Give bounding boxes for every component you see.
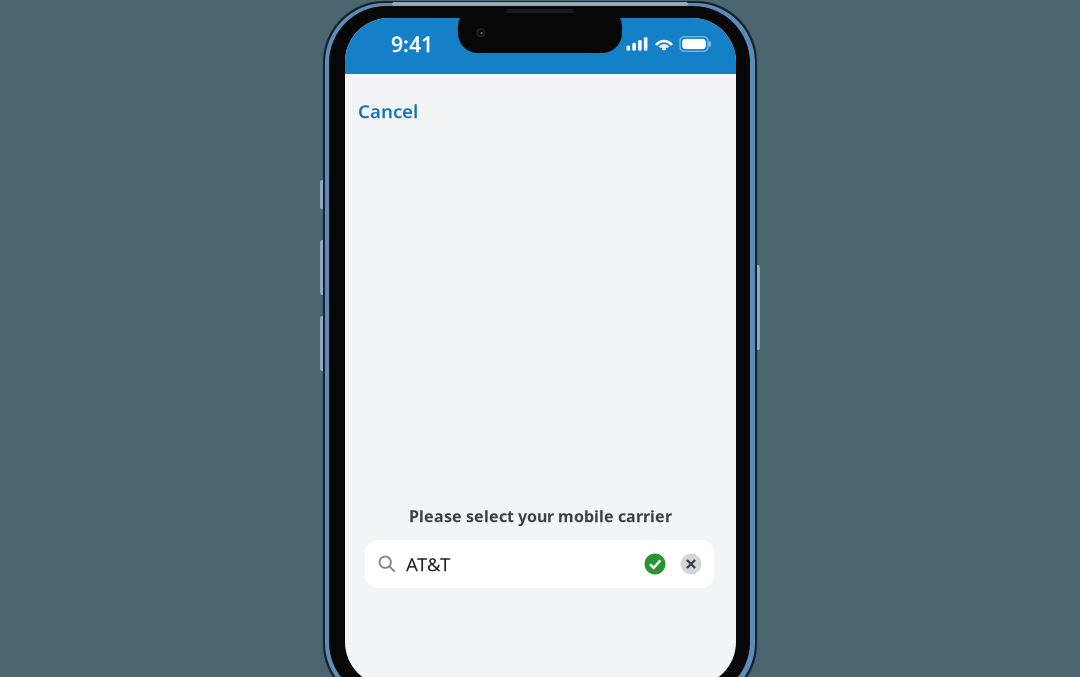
staticText: Please select your mobile carrier bbox=[409, 505, 672, 527]
staticText: Cancel bbox=[358, 99, 418, 123]
button[interactable]: Cancel bbox=[345, 92, 423, 130]
button[interactable]: Confirm carrier bbox=[640, 547, 670, 581]
staticText: 9:41 bbox=[391, 30, 433, 58]
button[interactable]: Clear text bbox=[676, 547, 706, 581]
staticText: AT&T bbox=[406, 552, 450, 576]
